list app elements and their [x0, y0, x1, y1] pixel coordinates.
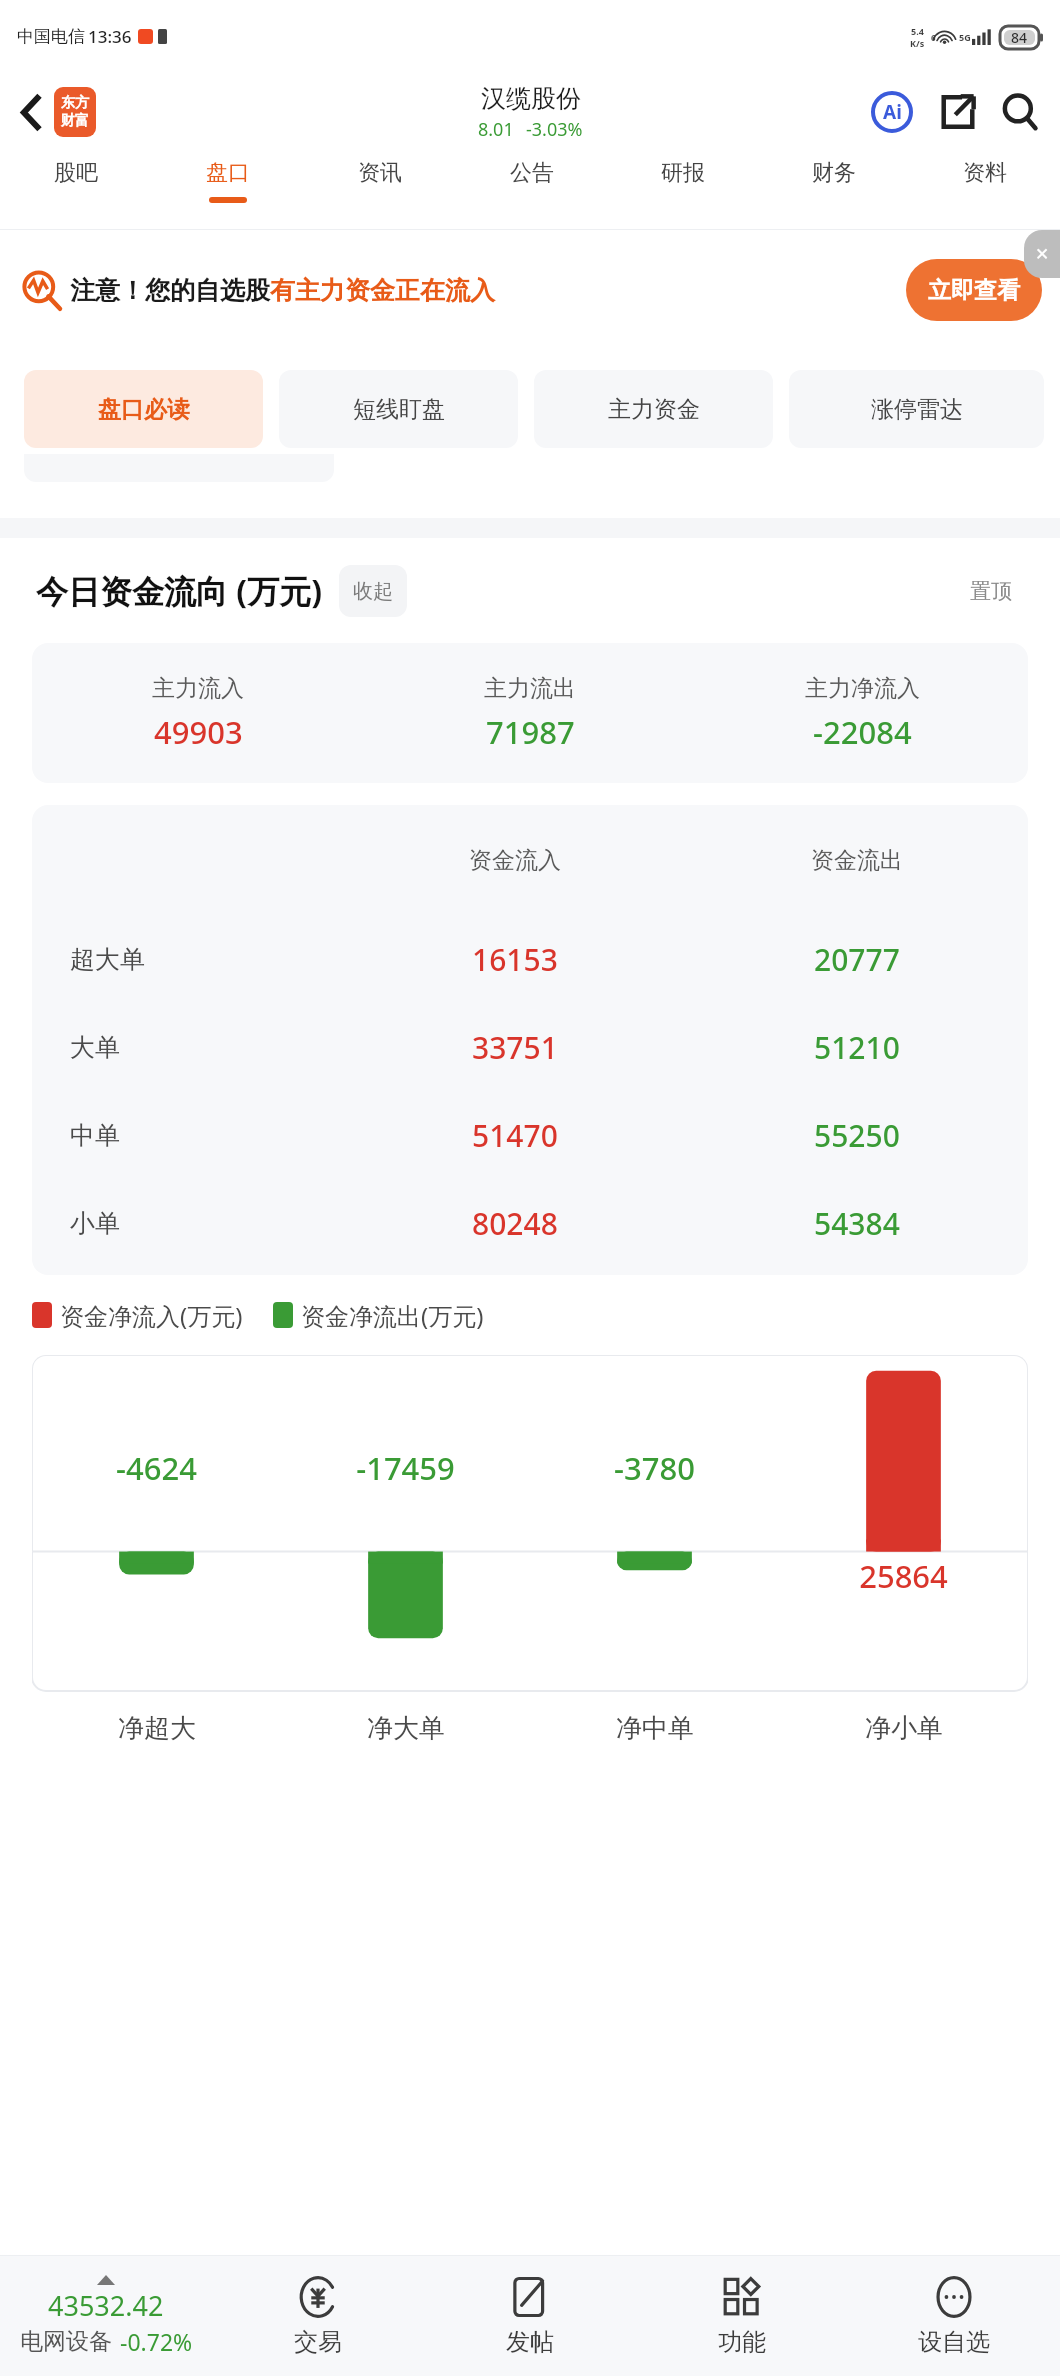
button[interactable]: 注意！ — [22, 259, 1042, 321]
staticText: 发帖 — [506, 2327, 554, 2357]
staticText: 财富 — [61, 112, 89, 130]
staticText: 54384 — [814, 1203, 900, 1244]
staticText: 主力净流入 — [805, 674, 920, 703]
button[interactable]: 交易 — [212, 2256, 424, 2376]
staticText: 5G — [959, 31, 971, 43]
staticText: 资金流入 — [469, 846, 561, 875]
button[interactable]: 资料 — [909, 151, 1060, 229]
staticText: 净小单 — [865, 1712, 943, 1745]
staticText: 55250 — [814, 1115, 900, 1156]
staticText: 主力流出 — [484, 674, 576, 703]
staticText: 84 — [1011, 28, 1028, 47]
button[interactable]: 立即查看 — [906, 259, 1042, 321]
staticText: 短线盯盘 — [353, 395, 445, 424]
button[interactable]: 资讯 — [304, 151, 456, 229]
button[interactable]: AI — [866, 86, 918, 138]
button[interactable]: 短线盯盘 — [279, 370, 518, 448]
staticText: 6 — [931, 32, 936, 43]
staticText: 49903 — [154, 711, 243, 753]
button[interactable]: 置顶 — [952, 563, 1030, 619]
staticText: -22084 — [813, 711, 912, 753]
staticText: 20777 — [814, 939, 900, 980]
staticText: 中单 — [70, 1120, 120, 1151]
staticText: 33751 — [472, 1027, 558, 1068]
staticText: ✕ — [1035, 244, 1050, 264]
button[interactable]: 超大单 — [32, 915, 1028, 1003]
button[interactable]: 大单 — [32, 1003, 1028, 1091]
staticText: 功能 — [718, 2327, 766, 2357]
button[interactable]: Close — [1024, 230, 1060, 278]
button[interactable]: 财务 — [758, 151, 909, 229]
button[interactable]: 盘口 — [152, 151, 304, 229]
staticText: 小单 — [70, 1208, 120, 1239]
staticText: 研报 — [661, 159, 705, 187]
staticText: 80248 — [472, 1203, 558, 1244]
staticText: 汉缆股份 — [481, 83, 581, 114]
button[interactable]: 小单 — [32, 1179, 1028, 1267]
staticText: 注意！ — [70, 275, 145, 306]
staticText: 资金净流出(万元) — [301, 1299, 484, 1332]
staticText: 财务 — [812, 159, 856, 187]
staticText: -17459 — [281, 1447, 530, 1489]
staticText: 25864 — [779, 1555, 1028, 1597]
button[interactable]: 公告 — [456, 151, 607, 229]
staticText: 立即查看 — [928, 276, 1020, 305]
button[interactable]: 功能 — [636, 2256, 848, 2376]
staticText: 资讯 — [358, 159, 402, 187]
staticText: 51210 — [814, 1027, 900, 1068]
staticText: 交易 — [294, 2327, 342, 2357]
staticText: 公告 — [510, 159, 554, 187]
button[interactable]: 发帖 — [424, 2256, 636, 2376]
staticText: 16153 — [472, 939, 558, 980]
staticText: 中国电信 — [17, 26, 85, 47]
staticText: 盘口 — [206, 159, 250, 187]
staticText: 东方 — [61, 94, 89, 112]
button[interactable]: 股吧 — [0, 151, 152, 229]
button[interactable]: Share — [932, 86, 984, 138]
button[interactable]: 涨停雷达 — [789, 370, 1044, 448]
staticText: -3.03% — [526, 117, 583, 142]
staticText: 13:36 — [88, 25, 132, 48]
staticText: 收起 — [353, 579, 393, 604]
button[interactable]: Search — [994, 86, 1046, 138]
staticText: 8.01 — [478, 117, 514, 142]
staticText: 大单 — [70, 1032, 120, 1063]
button[interactable]: 中单 — [32, 1091, 1028, 1179]
staticText: 涨停雷达 — [871, 395, 963, 424]
button[interactable]: 收起 — [339, 565, 407, 617]
staticText: 资金净流入(万元) — [60, 1299, 243, 1332]
staticText: 51470 — [472, 1115, 558, 1156]
staticText: 资金流出 — [811, 846, 903, 875]
button[interactable]: 主力资金 — [534, 370, 773, 448]
staticText: 股吧 — [54, 159, 98, 187]
staticText: Ai — [883, 99, 902, 125]
staticText: 主力资金 — [608, 395, 700, 424]
staticText: 净超大 — [118, 1712, 196, 1745]
staticText: 您的自选股 — [145, 275, 270, 306]
staticText: 今日资金流向 (万元) — [36, 569, 323, 613]
staticText: 净大单 — [367, 1712, 445, 1745]
staticText: -0.72% — [120, 2326, 193, 2357]
staticText: 有主力资金正在流入 — [270, 275, 495, 306]
staticText: 资料 — [963, 159, 1007, 187]
staticText: K/s — [910, 37, 925, 49]
button[interactable]: 43532.42 — [0, 2256, 212, 2376]
button[interactable]: 研报 — [607, 151, 758, 229]
staticText: 43532.42 — [48, 2287, 164, 2324]
staticText: 设自选 — [918, 2327, 990, 2357]
staticText: 盘口必读 — [98, 395, 190, 424]
button[interactable]: 东方财富 — [54, 87, 96, 137]
staticText: 超大单 — [70, 944, 145, 975]
button[interactable]: 盘口必读 — [24, 370, 263, 448]
staticText: 主力流入 — [152, 674, 244, 703]
button[interactable]: 设自选 — [848, 2256, 1060, 2376]
staticText: -4624 — [32, 1447, 281, 1489]
staticText: 71987 — [486, 711, 575, 753]
staticText: -3780 — [530, 1447, 779, 1489]
button[interactable]: 主力流入 — [32, 643, 1028, 783]
staticText: 电网设备 — [20, 2327, 112, 2356]
staticText: 置顶 — [970, 578, 1012, 604]
staticText: 净中单 — [616, 1712, 694, 1745]
staticText: 5.4 — [911, 25, 924, 37]
button[interactable]: Back — [8, 89, 54, 135]
